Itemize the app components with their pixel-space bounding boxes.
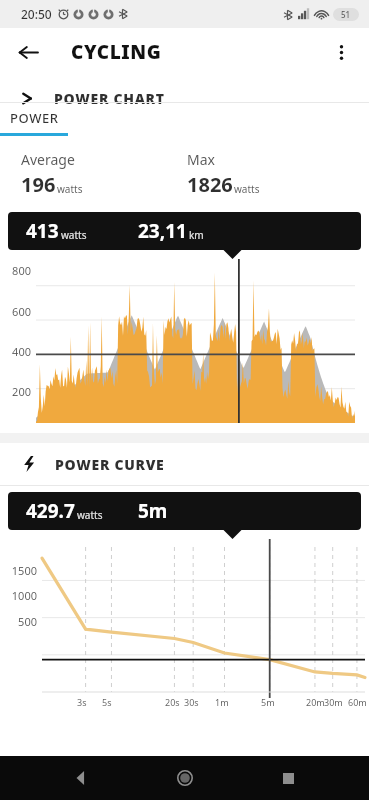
button[interactable]: Back xyxy=(8,32,48,72)
staticText: POWER CURVE xyxy=(55,455,165,474)
staticText: 1m xyxy=(215,696,229,708)
button[interactable]: Home xyxy=(163,756,207,800)
staticText: 400 xyxy=(0,344,31,359)
staticText: 196 xyxy=(21,171,56,198)
staticText: km xyxy=(189,228,204,242)
staticText: 1000 xyxy=(0,588,37,603)
staticText: 20:50 xyxy=(21,6,52,22)
button[interactable]: Back xyxy=(59,756,103,800)
staticText: 413 xyxy=(26,218,59,244)
staticText: 5m xyxy=(261,696,275,708)
staticText: 500 xyxy=(0,614,37,629)
button[interactable]: POWER CURVE xyxy=(0,443,369,485)
staticText: 800 xyxy=(0,263,31,278)
staticText: Average xyxy=(21,150,75,169)
staticText: 600 xyxy=(0,304,31,319)
staticText: 429.7 xyxy=(26,498,75,524)
staticText: watts xyxy=(77,508,103,522)
staticText: 20s xyxy=(165,696,180,708)
button[interactable]: More options xyxy=(321,32,361,72)
staticText: POWER xyxy=(10,109,59,127)
staticText: watts xyxy=(234,182,260,196)
staticText: 20m xyxy=(306,696,325,708)
staticText: 1500 xyxy=(0,563,37,578)
staticText: 60m xyxy=(348,696,367,708)
staticText: 51 xyxy=(341,9,351,20)
button[interactable]: POWER CHART xyxy=(20,85,165,111)
staticText: 3s xyxy=(77,696,87,708)
button[interactable]: POWER xyxy=(0,103,68,133)
staticText: 1826 xyxy=(187,171,233,198)
button[interactable]: Recent apps xyxy=(266,756,310,800)
staticText: 200 xyxy=(0,384,31,399)
staticText: POWER CHART xyxy=(54,89,165,108)
staticText: watts xyxy=(61,228,87,242)
staticText: CYCLING xyxy=(71,39,162,65)
staticText: 23,11 xyxy=(138,218,187,244)
staticText: 5m xyxy=(138,498,168,524)
staticText: 5s xyxy=(102,696,112,708)
staticText: 30s xyxy=(184,696,199,708)
staticText: Max xyxy=(187,150,215,169)
staticText: watts xyxy=(57,182,83,196)
staticText: 30m xyxy=(324,696,343,708)
